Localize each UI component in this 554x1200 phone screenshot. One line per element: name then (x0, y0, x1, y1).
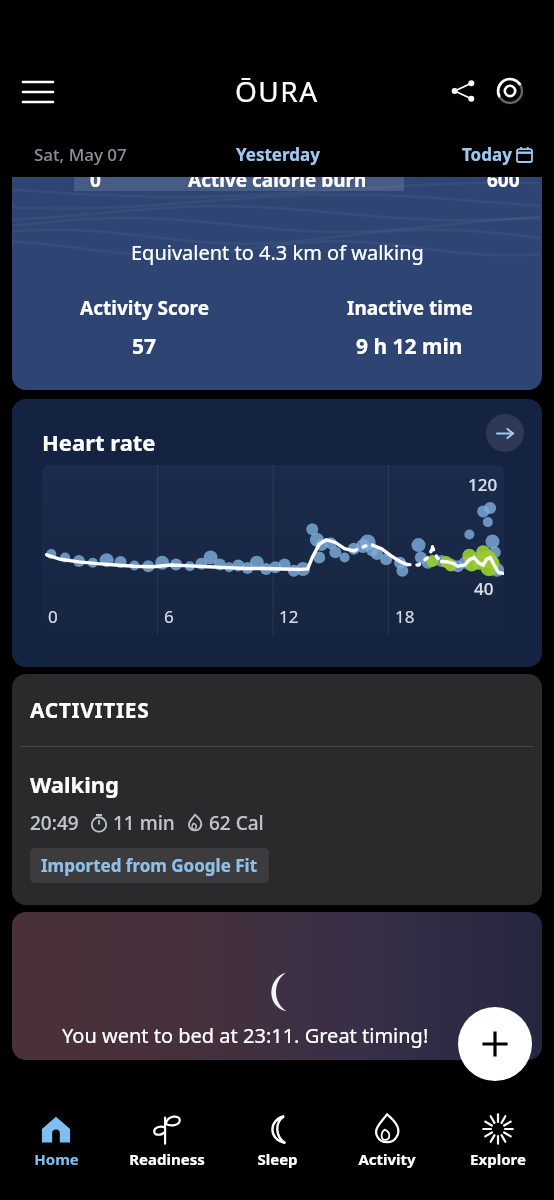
button[interactable]: Share (440, 68, 486, 114)
staticText: ŌURA (235, 72, 319, 110)
staticText: 11 min (113, 810, 175, 836)
staticText: Readiness (129, 1149, 205, 1169)
staticText: Active calorie burn (188, 177, 367, 193)
button[interactable]: Menu (12, 66, 64, 118)
staticText: Heart rate (42, 427, 156, 457)
staticText: 600 (487, 177, 520, 193)
staticText: Activity Score (80, 295, 210, 321)
button[interactable]: Explore (444, 1105, 552, 1200)
staticText: 0 (48, 605, 58, 628)
staticText: Yesterday (236, 143, 320, 166)
button[interactable]: Readiness (113, 1105, 221, 1200)
staticText: Sat, May 07 (34, 143, 127, 166)
staticText: 9 h 12 min (356, 332, 463, 361)
staticText: Sleep (257, 1149, 298, 1169)
button[interactable]: Heart rate (12, 399, 542, 667)
staticText: Activity (358, 1149, 416, 1169)
staticText: Equivalent to 4.3 km of walking (131, 239, 424, 266)
button[interactable]: Sleep (223, 1105, 331, 1200)
staticText: Walking (30, 769, 119, 799)
button[interactable]: 0 (12, 177, 542, 390)
staticText: 20:49 (30, 810, 79, 836)
staticText: 12 (279, 605, 299, 628)
button[interactable]: You went to bed at 23:11. Great timing! (12, 912, 542, 1060)
button[interactable]: Ring status (487, 68, 533, 114)
button[interactable]: Open heart rate details (486, 414, 524, 452)
staticText: 120 (468, 473, 498, 496)
button[interactable]: ACTIVITIES (12, 674, 542, 905)
button[interactable]: Imported from Google Fit (30, 848, 269, 883)
staticText: 40 (474, 577, 494, 600)
staticText: 62 Cal (209, 810, 264, 836)
button[interactable]: Activity (333, 1105, 441, 1200)
staticText: 6 (164, 605, 174, 628)
staticText: 18 (395, 605, 415, 628)
staticText: 0 (90, 177, 101, 193)
staticText: Today (462, 143, 512, 166)
button[interactable]: Home (2, 1105, 110, 1200)
button[interactable]: Yesterday (187, 143, 368, 166)
button[interactable]: Add (458, 1007, 532, 1081)
staticText: You went to bed at 23:11. Great timing! (62, 1022, 542, 1049)
staticText: 57 (132, 332, 157, 361)
staticText: Home (34, 1149, 79, 1169)
button[interactable]: Sat, May 07 (14, 143, 187, 166)
staticText: Imported from Google Fit (41, 854, 258, 877)
staticText: ACTIVITIES (30, 696, 150, 725)
button[interactable]: Today (368, 143, 540, 166)
staticText: Explore (470, 1149, 526, 1169)
staticText: Inactive time (347, 295, 473, 321)
